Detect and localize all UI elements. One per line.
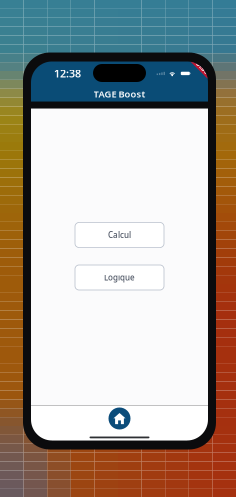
staticText: Calcul (108, 230, 131, 240)
staticText: DEBUG (194, 66, 213, 73)
staticText: TAGE Boost (93, 88, 145, 100)
button[interactable]: Logique (75, 265, 164, 290)
staticText: 12:38 (54, 66, 81, 80)
button[interactable]: Calcul (75, 222, 164, 247)
staticText: Logique (104, 272, 135, 283)
button[interactable]: Home (108, 407, 130, 429)
